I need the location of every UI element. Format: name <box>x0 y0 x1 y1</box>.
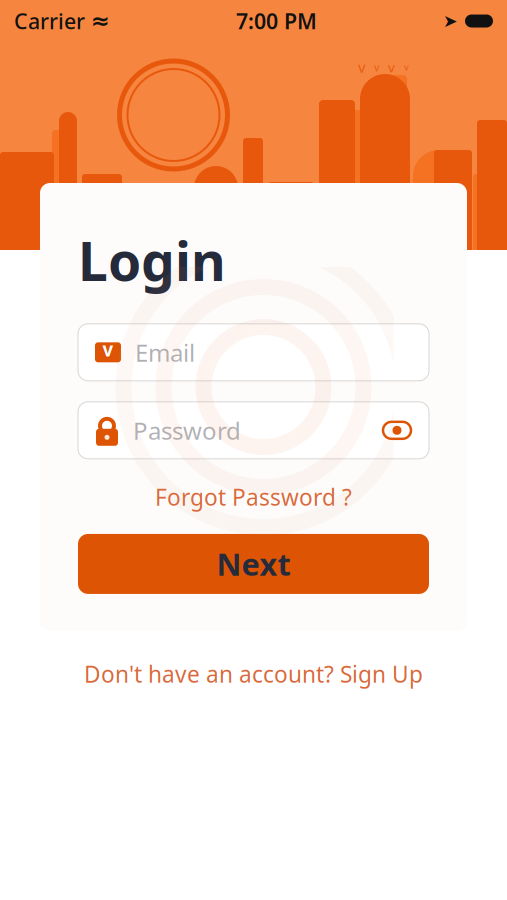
staticText: Carrier <box>14 7 85 35</box>
staticText: 7:00 PM <box>236 7 317 35</box>
staticText: v <box>388 58 395 76</box>
staticText: Don't have an account? Sign Up <box>84 659 423 689</box>
staticText: Login <box>78 225 226 296</box>
button[interactable]: Don't have an account? Sign Up <box>70 653 437 695</box>
staticText: ≈ <box>91 8 110 34</box>
staticText: Forgot Password ? <box>155 482 352 512</box>
staticText: v <box>374 60 379 74</box>
button[interactable]: v <box>78 324 429 381</box>
button[interactable]: Next <box>78 534 429 594</box>
staticText: Next <box>216 544 290 584</box>
staticText: ➤ <box>443 11 458 31</box>
staticText: Email <box>135 336 195 368</box>
staticText: v <box>102 337 113 362</box>
staticText: v <box>358 57 365 77</box>
button[interactable]: Password <box>78 402 429 459</box>
button[interactable]: Forgot Password ? <box>78 475 429 519</box>
staticText: v <box>404 61 409 73</box>
staticText: Password <box>133 414 241 446</box>
